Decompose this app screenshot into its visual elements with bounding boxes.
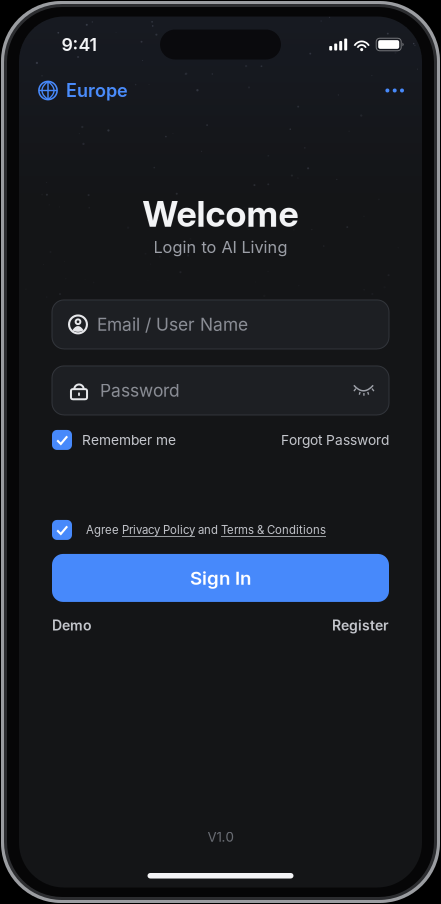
staticText: Terms & Conditions bbox=[221, 523, 326, 537]
button[interactable]: Remember me bbox=[52, 425, 176, 455]
staticText: Remember me bbox=[82, 432, 176, 448]
button[interactable]: Sign In bbox=[19, 554, 422, 602]
staticText: V1.0 bbox=[207, 829, 233, 845]
staticText: Europe bbox=[66, 80, 128, 101]
button[interactable]: Register bbox=[332, 611, 389, 640]
button[interactable]: Terms & Conditions bbox=[221, 523, 326, 537]
staticText: Agree bbox=[86, 523, 122, 537]
staticText: Register bbox=[332, 617, 389, 634]
button[interactable]: More options bbox=[369, 71, 422, 110]
button[interactable]: Privacy Policy bbox=[122, 523, 195, 537]
staticText: Forgot Password bbox=[281, 432, 389, 448]
staticText: Email / User Name bbox=[97, 314, 248, 335]
button[interactable]: Demo bbox=[52, 611, 92, 640]
staticText: Sign In bbox=[190, 567, 251, 589]
button[interactable]: Europe bbox=[19, 73, 140, 108]
staticText: and bbox=[195, 523, 221, 537]
button[interactable]: Forgot Password bbox=[281, 427, 389, 453]
staticText: Welcome bbox=[142, 192, 298, 235]
staticText: Password bbox=[100, 380, 180, 401]
staticText: Demo bbox=[52, 617, 92, 634]
staticText: Privacy Policy bbox=[122, 523, 195, 537]
button[interactable]: Show password bbox=[341, 368, 375, 413]
staticText: 9:41 bbox=[61, 34, 96, 55]
staticText: Login to AI Living bbox=[153, 237, 287, 257]
